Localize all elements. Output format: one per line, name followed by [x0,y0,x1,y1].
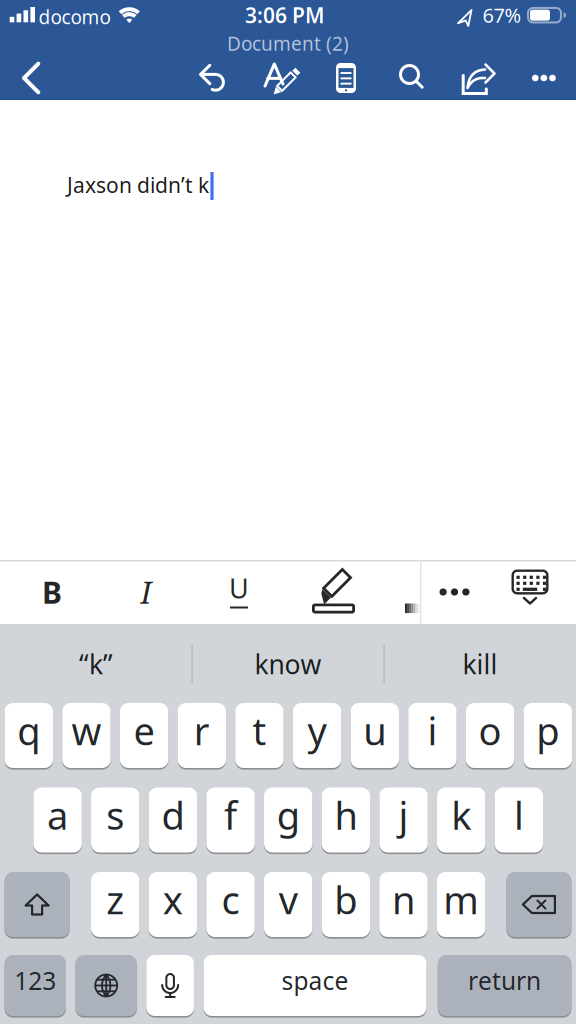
button[interactable]: b [322,872,370,937]
staticText: j [399,789,409,841]
button[interactable]: Format [258,56,302,100]
button[interactable]: k [437,787,485,852]
staticText: z [106,874,124,925]
button[interactable]: w [62,703,111,768]
staticText: l [514,789,524,841]
staticText: q [17,705,40,756]
button[interactable]: Bold [20,561,84,623]
button[interactable]: Dictation [146,955,194,1016]
button[interactable]: More [530,59,558,97]
button[interactable]: Highlight [301,561,365,623]
button[interactable]: y [293,703,341,768]
button[interactable]: Italic [114,561,178,623]
staticText: docomo [38,4,110,30]
staticText: g [277,789,300,841]
button[interactable]: u [351,703,399,768]
button[interactable]: d [149,787,197,852]
button[interactable]: a [33,787,82,852]
button[interactable]: More formatting options [435,563,473,620]
staticText: know [254,646,321,682]
button[interactable]: r [178,703,226,768]
staticText: m [443,874,479,925]
button[interactable]: 123 [5,955,66,1016]
button[interactable]: n [379,872,428,937]
staticText: a [47,789,68,841]
button[interactable]: Back [11,55,55,101]
staticText: Document (2) [227,31,349,56]
button[interactable]: Shift [5,872,70,937]
staticText: B [42,572,62,612]
staticText: e [134,705,155,756]
staticText: 67% [482,1,521,29]
staticText: t [252,705,266,756]
staticText: kill [462,646,497,682]
staticText: p [536,705,559,756]
staticText: d [161,789,184,841]
staticText: 123 [14,964,56,997]
button[interactable]: m [437,872,485,937]
staticText: y [308,705,327,756]
button[interactable]: Hide keyboard [505,563,555,620]
button[interactable]: return [438,955,571,1016]
button[interactable]: Search [390,56,434,100]
button[interactable]: h [322,787,370,852]
staticText: U [229,570,249,606]
staticText: x [163,874,183,925]
button[interactable]: j [379,787,428,852]
button[interactable]: o [466,703,514,768]
staticText: o [479,705,502,756]
staticText: s [106,789,124,841]
button[interactable]: Underline [207,561,271,623]
staticText: k [451,789,471,841]
staticText: return [468,964,541,997]
staticText: f [224,789,237,841]
button[interactable]: e [120,703,168,768]
staticText: u [363,705,386,756]
button[interactable]: i [408,703,457,768]
staticText: r [194,705,210,756]
button[interactable]: space [203,955,426,1016]
button[interactable]: “k” [6,633,186,695]
button[interactable]: f [206,787,255,852]
button[interactable]: p [523,703,572,768]
button[interactable]: kill [390,633,570,695]
button[interactable]: v [264,872,312,937]
button[interactable]: Mobile View [324,56,368,100]
staticText: b [334,874,357,925]
button[interactable]: Next keyboard [75,955,137,1016]
button[interactable]: z [91,872,139,937]
staticText: n [392,874,415,925]
staticText: i [427,705,437,756]
button[interactable]: l [495,787,543,852]
staticText: I [140,572,151,612]
staticText: space [281,964,348,997]
button[interactable]: Delete [506,872,571,937]
staticText: v [279,874,298,925]
button[interactable]: c [206,872,255,937]
staticText: 3:06 PM [245,1,325,29]
staticText: c [221,874,239,925]
staticText: h [334,789,357,841]
staticText: w [71,705,101,756]
button[interactable]: g [264,787,312,852]
button[interactable]: Share [455,56,499,100]
button[interactable]: know [198,633,378,695]
staticText: Jaxson didn’t k [67,170,209,199]
button[interactable]: t [235,703,284,768]
staticText: “k” [79,646,113,682]
button[interactable]: x [149,872,197,937]
button[interactable]: q [5,703,53,768]
button[interactable]: s [91,787,139,852]
button[interactable]: Undo [193,56,237,100]
